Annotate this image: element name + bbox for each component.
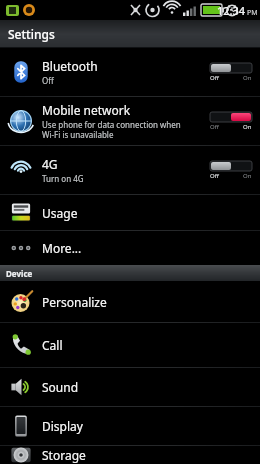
button[interactable]: Call xyxy=(0,323,260,367)
button[interactable]: Mobile network xyxy=(0,97,260,145)
staticText: Off xyxy=(210,74,219,82)
staticText: More... xyxy=(42,240,82,256)
staticText: PM xyxy=(247,8,258,18)
staticText: Display xyxy=(42,418,83,434)
staticText: Settings xyxy=(8,26,55,42)
button[interactable]: Sound xyxy=(0,368,260,406)
staticText: Turn on 4G xyxy=(42,173,84,184)
button[interactable]: Toggle 4G xyxy=(202,161,260,180)
button[interactable]: Toggle Bluetooth xyxy=(202,63,260,82)
button[interactable]: 4G xyxy=(0,146,260,194)
staticText: Personalize xyxy=(42,294,107,310)
button[interactable]: Storage xyxy=(0,446,260,464)
staticText: 12:34 xyxy=(217,3,246,18)
staticText: Off xyxy=(210,172,219,180)
button[interactable]: Display xyxy=(0,407,260,445)
button[interactable]: Personalize xyxy=(0,281,260,322)
staticText: Device xyxy=(6,268,33,279)
staticText: Usage xyxy=(42,205,78,221)
staticText: 4G xyxy=(42,156,58,172)
staticText: Sound xyxy=(42,379,79,395)
staticText: On xyxy=(243,172,252,180)
staticText: Call xyxy=(42,337,63,353)
staticText: On xyxy=(243,74,252,82)
staticText: Storage xyxy=(42,447,86,463)
staticText: Off xyxy=(42,75,54,86)
staticText: Use phone for data connection when Wi-Fi… xyxy=(42,119,181,140)
staticText: Bluetooth xyxy=(42,58,98,74)
button[interactable]: Toggle Mobile network xyxy=(202,112,260,131)
staticText: On xyxy=(243,123,252,131)
staticText: Off xyxy=(210,123,219,131)
button[interactable]: Bluetooth xyxy=(0,48,260,96)
button[interactable]: More... xyxy=(0,231,260,265)
button[interactable]: Usage xyxy=(0,195,260,230)
staticText: Mobile network xyxy=(42,102,131,118)
